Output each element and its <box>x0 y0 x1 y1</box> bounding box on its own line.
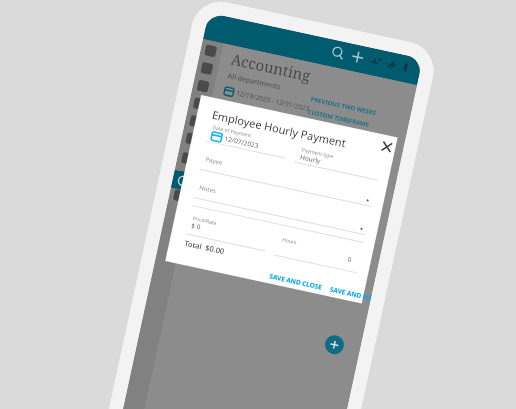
staticText: Hourly <box>299 152 322 166</box>
staticText: $ 0 <box>190 221 202 232</box>
staticText: Employee Hourly Payment <box>211 107 348 150</box>
staticText: 12/18/2023 - 12/31/2023 <box>235 88 311 113</box>
staticText: 12/07/2023 <box>224 134 260 150</box>
staticText: Date of Payment <box>212 124 252 139</box>
button[interactable]: Close <box>377 137 396 156</box>
button[interactable]: SAVE AND CLOSE <box>268 271 323 292</box>
staticText: Payment type <box>301 146 335 160</box>
staticText: All departments <box>227 71 282 92</box>
staticText: Accounting <box>229 49 313 85</box>
staticText: Hours <box>282 236 298 246</box>
staticText: Price/Rate <box>192 215 218 227</box>
staticText: 0 <box>347 255 353 264</box>
button[interactable]: CUSTOM TIMEFRAME <box>307 108 370 129</box>
button[interactable]: PREVIOUS TWO WEEKS <box>310 95 377 117</box>
staticText: Total $0.00 <box>183 238 226 256</box>
staticText: Payee <box>205 155 223 167</box>
staticText: Notes <box>199 184 217 195</box>
button[interactable]: SAVE AND NEW <box>329 285 372 302</box>
